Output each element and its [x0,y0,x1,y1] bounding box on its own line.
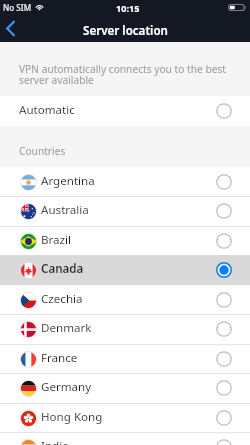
staticText: Countries [19,144,66,158]
button[interactable]: Canada [0,255,250,285]
staticText: France [41,350,78,366]
staticText: No SIM [3,2,32,13]
button[interactable]: Germany [0,373,250,403]
button[interactable]: Brazil [0,226,250,256]
staticText: Hong Kong [41,409,103,425]
staticText: VPN automatically connects you to the be… [19,62,228,87]
button[interactable]: Argentina [0,167,250,197]
button[interactable]: Automatic [0,96,250,126]
staticText: 10:15 [116,2,140,14]
staticText: Server location [83,23,168,39]
staticText: Argentina [41,173,95,189]
staticText: Brazil [41,232,72,248]
staticText: Australia [41,202,89,218]
button[interactable]: Denmark [0,314,250,344]
button[interactable]: Czechia [0,285,250,315]
button[interactable]: Back [0,16,21,40]
staticText: Automatic [19,102,75,118]
staticText: Czechia [41,291,83,307]
button[interactable]: India [0,432,250,445]
staticText: Canada [41,261,84,277]
staticText: Denmark [41,320,92,336]
button[interactable]: Australia [0,196,250,226]
button[interactable]: France [0,344,250,374]
button[interactable]: Hong Kong [0,403,250,433]
staticText: India [41,438,69,445]
staticText: Germany [41,379,92,395]
